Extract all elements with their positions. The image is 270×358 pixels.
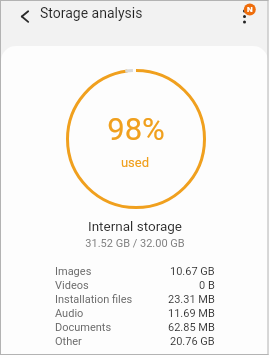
- button[interactable]: Videos: [55, 278, 215, 292]
- staticText: Audio: [55, 307, 84, 320]
- staticText: Internal storage: [0, 218, 270, 234]
- staticText: Installation files: [55, 293, 133, 306]
- staticText: used: [0, 155, 270, 170]
- staticText: Storage analysis: [40, 5, 143, 21]
- staticText: 98%: [1, 111, 270, 147]
- staticText: 0 B: [199, 279, 215, 292]
- button[interactable]: Audio: [55, 306, 215, 320]
- staticText: 31.52 GB / 32.00 GB: [0, 237, 270, 250]
- button[interactable]: N: [236, 0, 262, 26]
- staticText: N: [247, 5, 253, 14]
- button[interactable]: [14, 8, 36, 26]
- staticText: Videos: [55, 279, 89, 292]
- staticText: 10.67 GB: [170, 265, 215, 278]
- staticText: Other: [55, 335, 82, 348]
- button[interactable]: Installation files: [55, 292, 215, 306]
- staticText: Documents: [55, 321, 112, 334]
- staticText: 62.85 MB: [168, 321, 215, 334]
- staticText: Images: [55, 265, 92, 278]
- staticText: 11.69 MB: [168, 307, 215, 320]
- button[interactable]: Other: [55, 334, 215, 348]
- button[interactable]: Images: [55, 264, 215, 278]
- staticText: 20.76 GB: [170, 335, 215, 348]
- staticText: 23.31 MB: [168, 293, 215, 306]
- button[interactable]: Documents: [55, 320, 215, 334]
